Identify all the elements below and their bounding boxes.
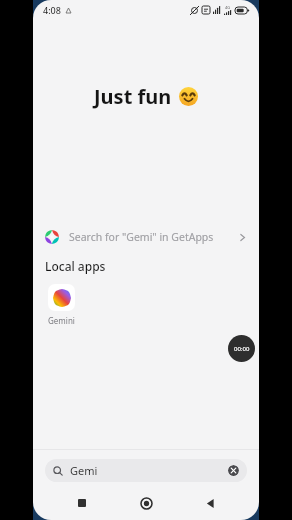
button[interactable]: Gemini [46,284,77,326]
button[interactable]: Recent apps [67,492,97,514]
button[interactable]: Home [131,492,161,514]
button[interactable]: Gemi [45,459,247,482]
staticText: 00:00 [234,345,250,353]
staticText: 4G [225,5,231,10]
staticText: Search for "Gemi" in GetApps [69,230,214,244]
button[interactable]: 00:00 [228,335,255,362]
staticText: Local apps [45,258,106,274]
other: Open GetApps search [237,232,248,243]
button[interactable]: Search for "Gemi" in GetApps [33,221,259,253]
staticText: Just fun [94,83,172,110]
staticText: Gemi [70,463,98,478]
staticText: 4:08 [43,4,61,16]
button[interactable]: Back [195,492,225,514]
button[interactable]: Clear search [228,465,239,476]
staticText: Gemini [48,315,75,326]
